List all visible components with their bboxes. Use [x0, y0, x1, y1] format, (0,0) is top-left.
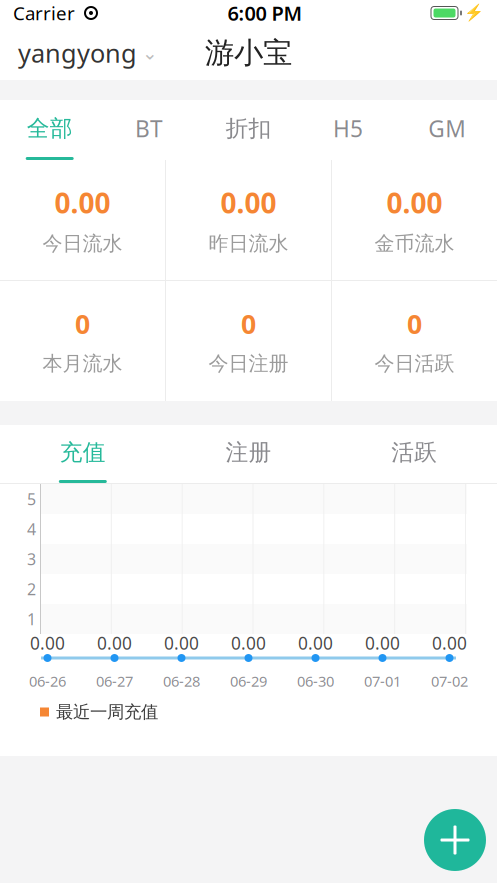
staticText: 06-26	[29, 671, 66, 691]
staticText: 0.00	[164, 631, 199, 654]
button[interactable]: yangyong	[0, 26, 176, 80]
staticText: 2	[27, 578, 36, 600]
staticText: 0.00	[298, 631, 333, 654]
staticText: ⌄	[142, 42, 158, 64]
staticText: 06-27	[96, 671, 133, 691]
staticText: 今日注册	[208, 351, 288, 376]
button[interactable]: 注册	[166, 425, 331, 483]
staticText: 最近一周充值	[56, 701, 158, 723]
staticText: 昨日流水	[208, 231, 288, 256]
staticText: H5	[333, 113, 363, 143]
button[interactable]: BT	[99, 100, 199, 160]
staticText: 今日流水	[42, 231, 122, 256]
staticText: 全部	[27, 115, 73, 142]
staticText: 活跃	[391, 439, 437, 466]
staticText: 0	[241, 306, 256, 341]
staticText: 0	[75, 306, 90, 341]
staticText: GM	[428, 113, 466, 143]
button[interactable]: 全部	[0, 100, 99, 160]
staticText: yangyong	[18, 36, 137, 70]
staticText: 折扣	[225, 115, 271, 142]
staticText: 金币流水	[374, 231, 454, 256]
staticText: 0.00	[365, 631, 400, 654]
button[interactable]: 充值	[0, 425, 166, 483]
staticText: 0.00	[231, 631, 266, 654]
button[interactable]: 活跃	[331, 425, 497, 483]
staticText: 3	[27, 548, 36, 570]
staticText: 今日活跃	[374, 351, 454, 376]
staticText: BT	[135, 113, 163, 143]
staticText: ⚡	[464, 4, 484, 22]
staticText: 5	[27, 488, 36, 510]
staticText: 0.00	[54, 184, 110, 221]
staticText: 0.00	[30, 631, 65, 654]
staticText: 0.00	[220, 184, 276, 221]
button[interactable]: GM	[398, 100, 497, 160]
staticText: 1	[27, 608, 36, 630]
staticText: 4	[27, 518, 36, 540]
staticText: 06-30	[297, 671, 334, 691]
staticText: 07-01	[364, 671, 401, 691]
staticText: 充值	[60, 439, 106, 466]
button[interactable]: 折扣	[199, 100, 298, 160]
staticText: 注册	[225, 439, 271, 466]
staticText: 0.00	[432, 631, 467, 654]
staticText: 0	[407, 306, 422, 341]
staticText: 07-02	[431, 671, 468, 691]
staticText: 6:00 PM	[227, 0, 302, 26]
staticText: 06-28	[163, 671, 200, 691]
staticText: 游小宝	[205, 35, 292, 71]
button[interactable]: Add	[424, 809, 486, 871]
staticText: Carrier	[13, 1, 75, 25]
staticText: 06-29	[230, 671, 267, 691]
staticText: 0.00	[97, 631, 132, 654]
staticText: 本月流水	[42, 351, 122, 376]
staticText: 0.00	[386, 184, 442, 221]
button[interactable]: H5	[298, 100, 398, 160]
